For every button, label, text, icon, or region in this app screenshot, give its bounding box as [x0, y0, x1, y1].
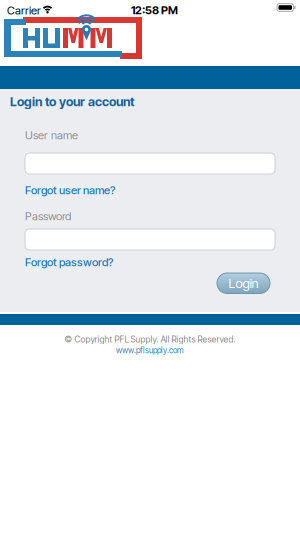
button[interactable]: User name: [25, 153, 275, 174]
staticText: Login to your account: [10, 94, 135, 109]
button[interactable]: Forgot user name?: [25, 183, 115, 197]
staticText: Forgot user name?: [25, 183, 115, 197]
staticText: Carrier: [7, 3, 41, 17]
staticText: www.pflsupply.com: [116, 345, 184, 355]
staticText: Forgot password?: [25, 255, 113, 269]
staticText: Login: [228, 275, 258, 291]
staticText: 12:58 PM: [131, 3, 178, 17]
button[interactable]: Login: [217, 273, 270, 293]
staticText: Password: [25, 209, 71, 223]
staticText: © Copyright PFL Supply. All Rights Reser…: [64, 334, 235, 344]
staticText: User name: [25, 128, 78, 142]
button[interactable]: www.pflsupply.com: [116, 345, 184, 355]
button[interactable]: Password: [25, 229, 275, 250]
button[interactable]: Forgot password?: [25, 255, 113, 269]
